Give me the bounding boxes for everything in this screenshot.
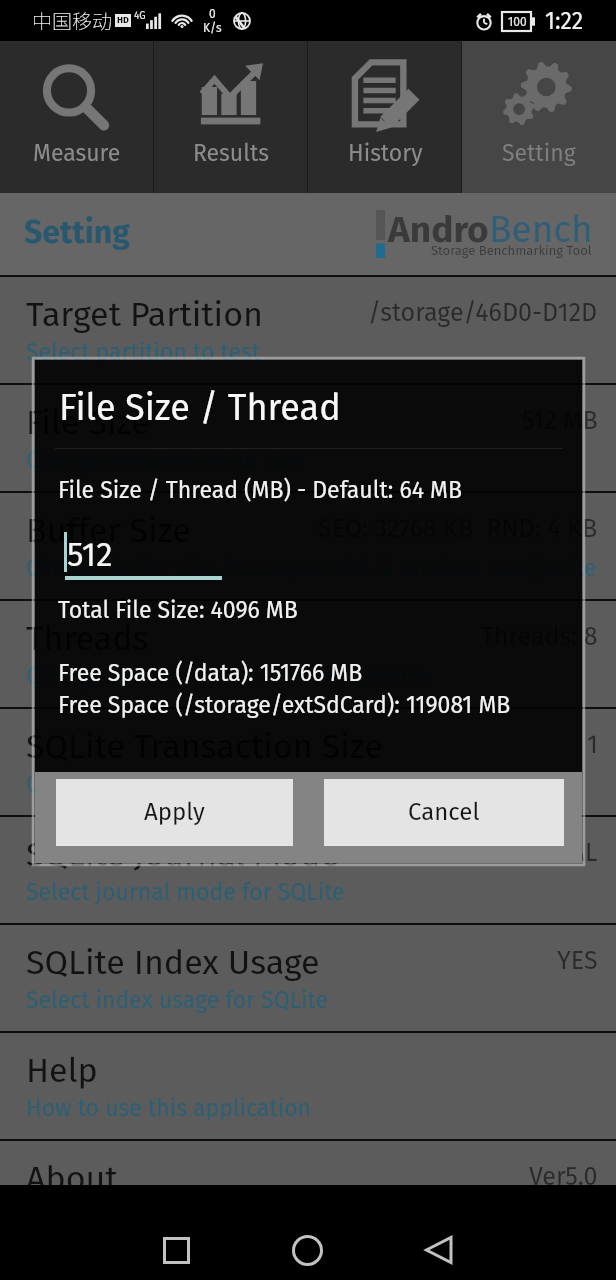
button[interactable]: Home [275,1218,339,1280]
staticText: 4G [134,10,146,22]
staticText: 0 [209,7,216,21]
staticText: Select partition to test [26,338,261,366]
button[interactable]: Target Partition [0,275,616,383]
staticText: SQLite Transaction Size [26,726,383,767]
button[interactable]: Results [154,41,308,193]
button[interactable]: Measure [0,41,154,193]
staticText: Select journal mode for SQLite [26,878,345,906]
button[interactable]: Back [407,1218,471,1280]
staticText: Buffer Size [26,510,191,551]
staticText: HD [117,15,129,26]
staticText: Measure [33,139,121,167]
staticText: YES [557,946,598,976]
button[interactable]: About [0,1139,616,1247]
button[interactable]: Threads [0,599,616,707]
staticText: Ver5.0 [529,1162,598,1192]
button[interactable]: Setting [462,41,616,193]
button[interactable]: Help [0,1031,616,1139]
staticText: 1 [587,730,598,760]
staticText: Threads [26,618,149,659]
staticText: Threads: 8 [481,622,598,652]
staticText: /storage/46D0-D12D [368,298,598,328]
staticText: About [26,1158,118,1199]
button[interactable]: SQLite Transaction Size [0,707,616,815]
staticText: SQLite Journal Mode [26,834,340,875]
staticText: Target Partition [26,294,263,335]
button[interactable]: History [308,41,462,193]
button[interactable]: Apply [56,779,293,846]
staticText: Select index usage for SQLite [26,986,329,1014]
staticText: File Size / Thread [59,386,341,429]
button[interactable]: Buffer Size [0,491,616,599]
staticText: Andro [388,207,489,251]
staticText: Results [193,139,270,167]
staticText: Change read/write file size [26,446,304,474]
staticText: 512 MB [522,406,598,436]
button[interactable]: SQLite Index Usage [0,923,616,1031]
staticText: Total File Size: 4096 MB [58,596,298,624]
staticText: Free Space (/data): 151766 MB [58,659,363,687]
staticText: WAL [550,838,598,868]
staticText: Setting [502,139,576,167]
button[interactable]: SQLite Journal Mode [0,815,616,923]
staticText: File Size / Thread (MB) - Default: 64 MB [58,476,462,504]
staticText: SEQ: 32768 KB RND: 4 KB [318,514,598,544]
staticText: Change threads for random read/write [26,662,428,690]
staticText: Cancel [408,798,480,827]
staticText: 512 [67,535,113,575]
staticText: K/s [203,21,222,35]
button[interactable]: Recent apps [144,1218,208,1280]
staticText: Change buffer size for sequential & rand… [26,554,597,582]
staticText: History [348,139,423,167]
staticText: File Size [26,402,150,443]
staticText: Free Space (/storage/extSdCard): 119081 … [58,691,511,719]
staticText: Help [26,1050,98,1091]
staticText: Change transaction size for SQLite [26,770,382,798]
staticText: Bench [489,207,593,251]
staticText: Setting [24,213,130,251]
staticText: 1:22 [545,7,584,35]
button[interactable]: Cancel [324,779,564,846]
staticText: 中国移动 [32,6,112,35]
staticText: SQLite Index Usage [26,942,320,983]
staticText: Apply [144,798,205,827]
button[interactable]: File Size [0,383,616,491]
staticText: Storage Benchmarking Tool [431,243,592,259]
staticText: How to use this application [26,1094,312,1122]
staticText: 100 [508,15,527,29]
